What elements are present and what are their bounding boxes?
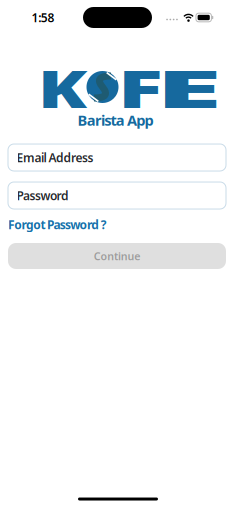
button[interactable]: Continue xyxy=(8,243,226,269)
staticText: Continue xyxy=(94,249,140,263)
staticText: K xyxy=(45,55,80,122)
staticText: 1:58 xyxy=(32,9,54,25)
button[interactable]: Password xyxy=(8,182,226,209)
button[interactable]: Forgot Password ? xyxy=(8,216,107,232)
staticText: E xyxy=(175,55,203,122)
staticText: Barista App xyxy=(77,110,153,130)
staticText: Forgot Password ? xyxy=(8,216,107,232)
staticText: F xyxy=(126,55,153,122)
staticText: Email Address xyxy=(16,149,93,165)
staticText: Password xyxy=(16,187,69,203)
button[interactable]: Email Address xyxy=(8,144,226,171)
